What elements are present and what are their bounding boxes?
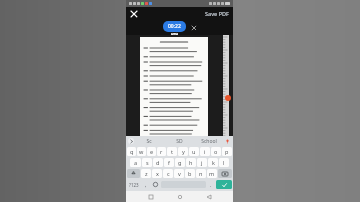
staticText: s bbox=[146, 159, 149, 166]
staticText: h bbox=[189, 159, 193, 166]
button[interactable]: l bbox=[219, 158, 229, 167]
button[interactable]: Remove attachment bbox=[190, 24, 197, 31]
button[interactable]: w bbox=[137, 147, 146, 156]
staticText: e bbox=[150, 148, 154, 155]
button[interactable]: r bbox=[157, 147, 166, 156]
staticText: r bbox=[160, 148, 163, 155]
staticText: . bbox=[210, 181, 212, 188]
staticText: c bbox=[167, 170, 170, 177]
staticText: m bbox=[209, 170, 215, 177]
button[interactable]: i bbox=[200, 147, 210, 156]
button[interactable]: y bbox=[178, 147, 188, 156]
staticText: y bbox=[182, 148, 185, 155]
staticText: t bbox=[171, 148, 173, 155]
staticText: b bbox=[188, 170, 192, 177]
button[interactable]: ?123 bbox=[127, 180, 141, 189]
staticText: SD bbox=[176, 138, 183, 145]
button[interactable]: Attached image bbox=[171, 33, 178, 35]
button[interactable]: b bbox=[185, 169, 195, 178]
staticText: q bbox=[130, 148, 134, 155]
staticText: z bbox=[145, 170, 148, 177]
staticText: j bbox=[201, 159, 203, 166]
button[interactable]: k bbox=[208, 158, 218, 167]
staticText: p bbox=[225, 148, 229, 155]
button[interactable]: Home bbox=[175, 192, 184, 201]
button[interactable]: m bbox=[207, 169, 217, 178]
button[interactable]: c bbox=[163, 169, 173, 178]
staticText: d bbox=[156, 159, 160, 166]
button[interactable]: Save PDF bbox=[203, 9, 231, 18]
button[interactable]: t bbox=[167, 147, 177, 156]
staticText: School bbox=[201, 138, 217, 145]
button[interactable]: z bbox=[141, 169, 151, 178]
button[interactable]: o bbox=[211, 147, 221, 156]
staticText: Sc bbox=[146, 138, 152, 145]
button[interactable]: Recents bbox=[146, 192, 155, 201]
staticText: a bbox=[134, 159, 138, 166]
button[interactable]: p bbox=[222, 147, 232, 156]
button[interactable]: j bbox=[197, 158, 207, 167]
button[interactable]: s bbox=[142, 158, 152, 167]
button[interactable] bbox=[140, 37, 208, 138]
button[interactable]: School bbox=[194, 136, 224, 146]
button[interactable]: Enter bbox=[216, 180, 232, 189]
staticText: l bbox=[223, 159, 225, 166]
staticText: i bbox=[204, 148, 206, 155]
button[interactable]: u bbox=[189, 147, 199, 156]
button[interactable]: Back bbox=[204, 192, 213, 201]
button[interactable]: Sc bbox=[134, 136, 164, 146]
staticText: o bbox=[214, 148, 218, 155]
button[interactable]: Backspace bbox=[218, 169, 232, 178]
staticText: k bbox=[212, 159, 215, 166]
button[interactable]: x bbox=[152, 169, 162, 178]
button[interactable]: g bbox=[175, 158, 185, 167]
button[interactable]: Voice input bbox=[224, 138, 231, 145]
staticText: g bbox=[178, 159, 182, 166]
staticText: x bbox=[156, 170, 159, 177]
button[interactable]: e bbox=[147, 147, 156, 156]
staticText: 00:22 bbox=[168, 23, 181, 30]
button[interactable]: d bbox=[153, 158, 163, 167]
button[interactable]: n bbox=[196, 169, 206, 178]
staticText: n bbox=[199, 170, 203, 177]
staticText: Save PDF bbox=[205, 10, 229, 17]
button[interactable]: h bbox=[186, 158, 196, 167]
button[interactable]: More suggestions bbox=[128, 138, 134, 144]
staticText: f bbox=[168, 159, 170, 166]
button[interactable]: a bbox=[130, 158, 141, 167]
button[interactable]: , bbox=[142, 179, 150, 190]
button[interactable]: 00:22 bbox=[163, 21, 186, 32]
button[interactable]: Scroll handle bbox=[225, 95, 231, 101]
button[interactable]: Close bbox=[128, 8, 139, 19]
button[interactable]: SD bbox=[164, 136, 194, 146]
button[interactable]: f bbox=[164, 158, 174, 167]
staticText: v bbox=[178, 170, 181, 177]
button[interactable]: Shift bbox=[127, 169, 140, 178]
button[interactable]: q bbox=[127, 147, 136, 156]
staticText: u bbox=[192, 148, 196, 155]
staticText: ?123 bbox=[129, 182, 139, 188]
button[interactable]: Emoji bbox=[151, 179, 160, 190]
button[interactable]: v bbox=[174, 169, 184, 178]
button[interactable]: . bbox=[207, 179, 215, 190]
staticText: w bbox=[139, 148, 144, 155]
staticText: , bbox=[145, 181, 147, 188]
